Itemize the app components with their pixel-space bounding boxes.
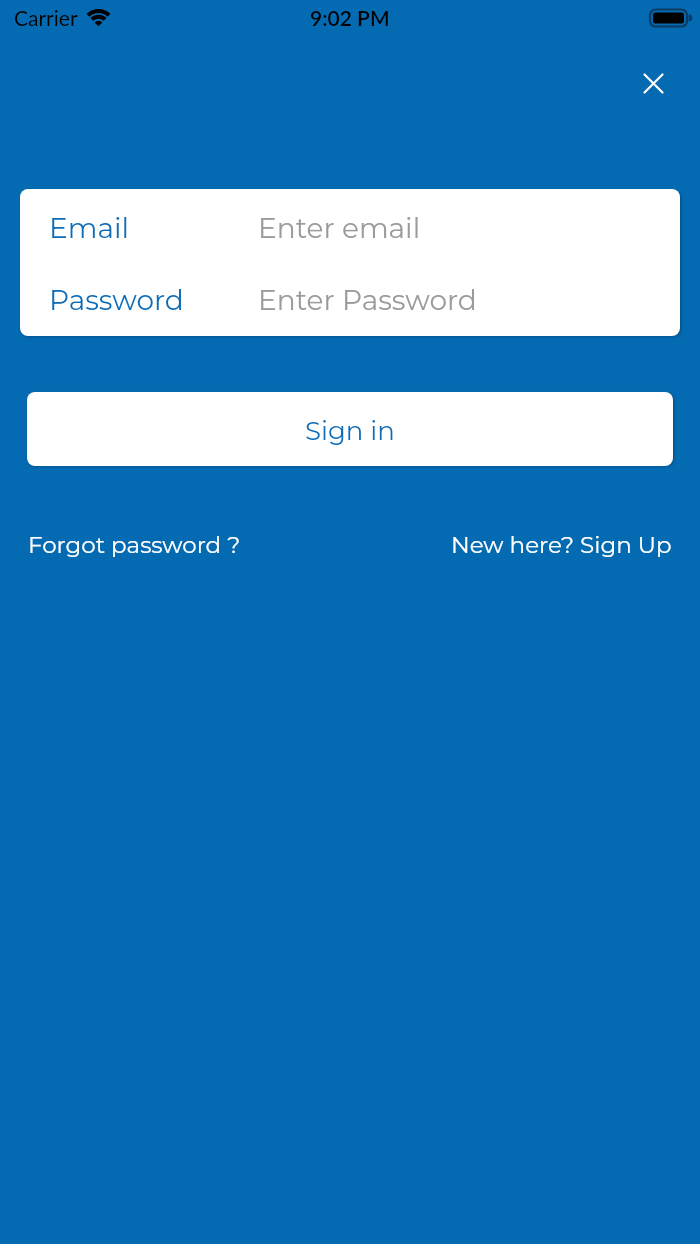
staticText: 9:02 PM	[310, 5, 390, 30]
staticText: Enter Password	[258, 283, 477, 317]
staticText: Password	[49, 283, 184, 317]
staticText: Forgot password ?	[28, 531, 241, 559]
staticText: Email	[49, 211, 130, 245]
button[interactable]: New here? Sign Up	[451, 531, 672, 559]
button[interactable]: Forgot password ?	[28, 531, 241, 559]
staticText: Enter email	[258, 211, 421, 245]
button[interactable]	[644, 74, 663, 93]
staticText: Carrier	[14, 5, 78, 30]
staticText: Sign in	[305, 415, 395, 447]
button[interactable]: Sign in	[27, 392, 673, 466]
staticText: New here? Sign Up	[451, 531, 672, 559]
